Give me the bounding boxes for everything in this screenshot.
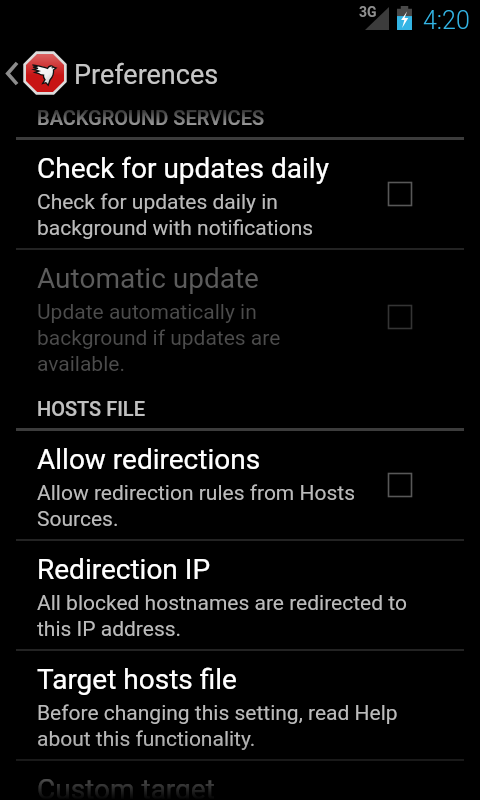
staticText: Custom target	[37, 773, 215, 800]
staticText: Allow redirection rules from Hosts	[37, 481, 355, 506]
staticText: available.	[37, 352, 125, 377]
staticText: about this functionality.	[37, 727, 256, 752]
staticText: Target hosts file	[37, 663, 237, 696]
staticText: Check for updates daily	[37, 152, 329, 185]
button[interactable]: Navigate up	[0, 50, 69, 96]
staticText: this IP address.	[37, 617, 182, 642]
button[interactable]: Custom target	[0, 761, 480, 800]
staticText: Redirection IP	[37, 553, 211, 586]
staticText: Check for updates daily in	[37, 190, 278, 215]
staticText: All blocked hostnames are redirected to	[37, 591, 407, 616]
button[interactable]: Redirection IP	[0, 541, 480, 649]
staticText: HOSTS FILE	[37, 397, 145, 420]
staticText: Update automatically in	[37, 300, 257, 325]
staticText: Sources.	[37, 507, 119, 532]
staticText: 3G	[359, 4, 377, 20]
staticText: Before changing this setting, read Help	[37, 701, 398, 726]
staticText: 4:20	[423, 6, 470, 35]
staticText: Automatic update	[37, 262, 259, 295]
staticText: background if updates are	[37, 326, 281, 351]
button[interactable]: Target hosts file	[0, 651, 480, 759]
button[interactable]: Check for updates daily	[0, 140, 480, 248]
button[interactable]: Allow redirections	[0, 431, 480, 539]
staticText: background with notifications	[37, 216, 314, 241]
button[interactable]: Automatic update	[0, 250, 480, 384]
staticText: Allow redirections	[37, 443, 261, 476]
staticText: BACKGROUND SERVICES	[37, 106, 265, 129]
staticText: Preferences	[74, 59, 219, 91]
